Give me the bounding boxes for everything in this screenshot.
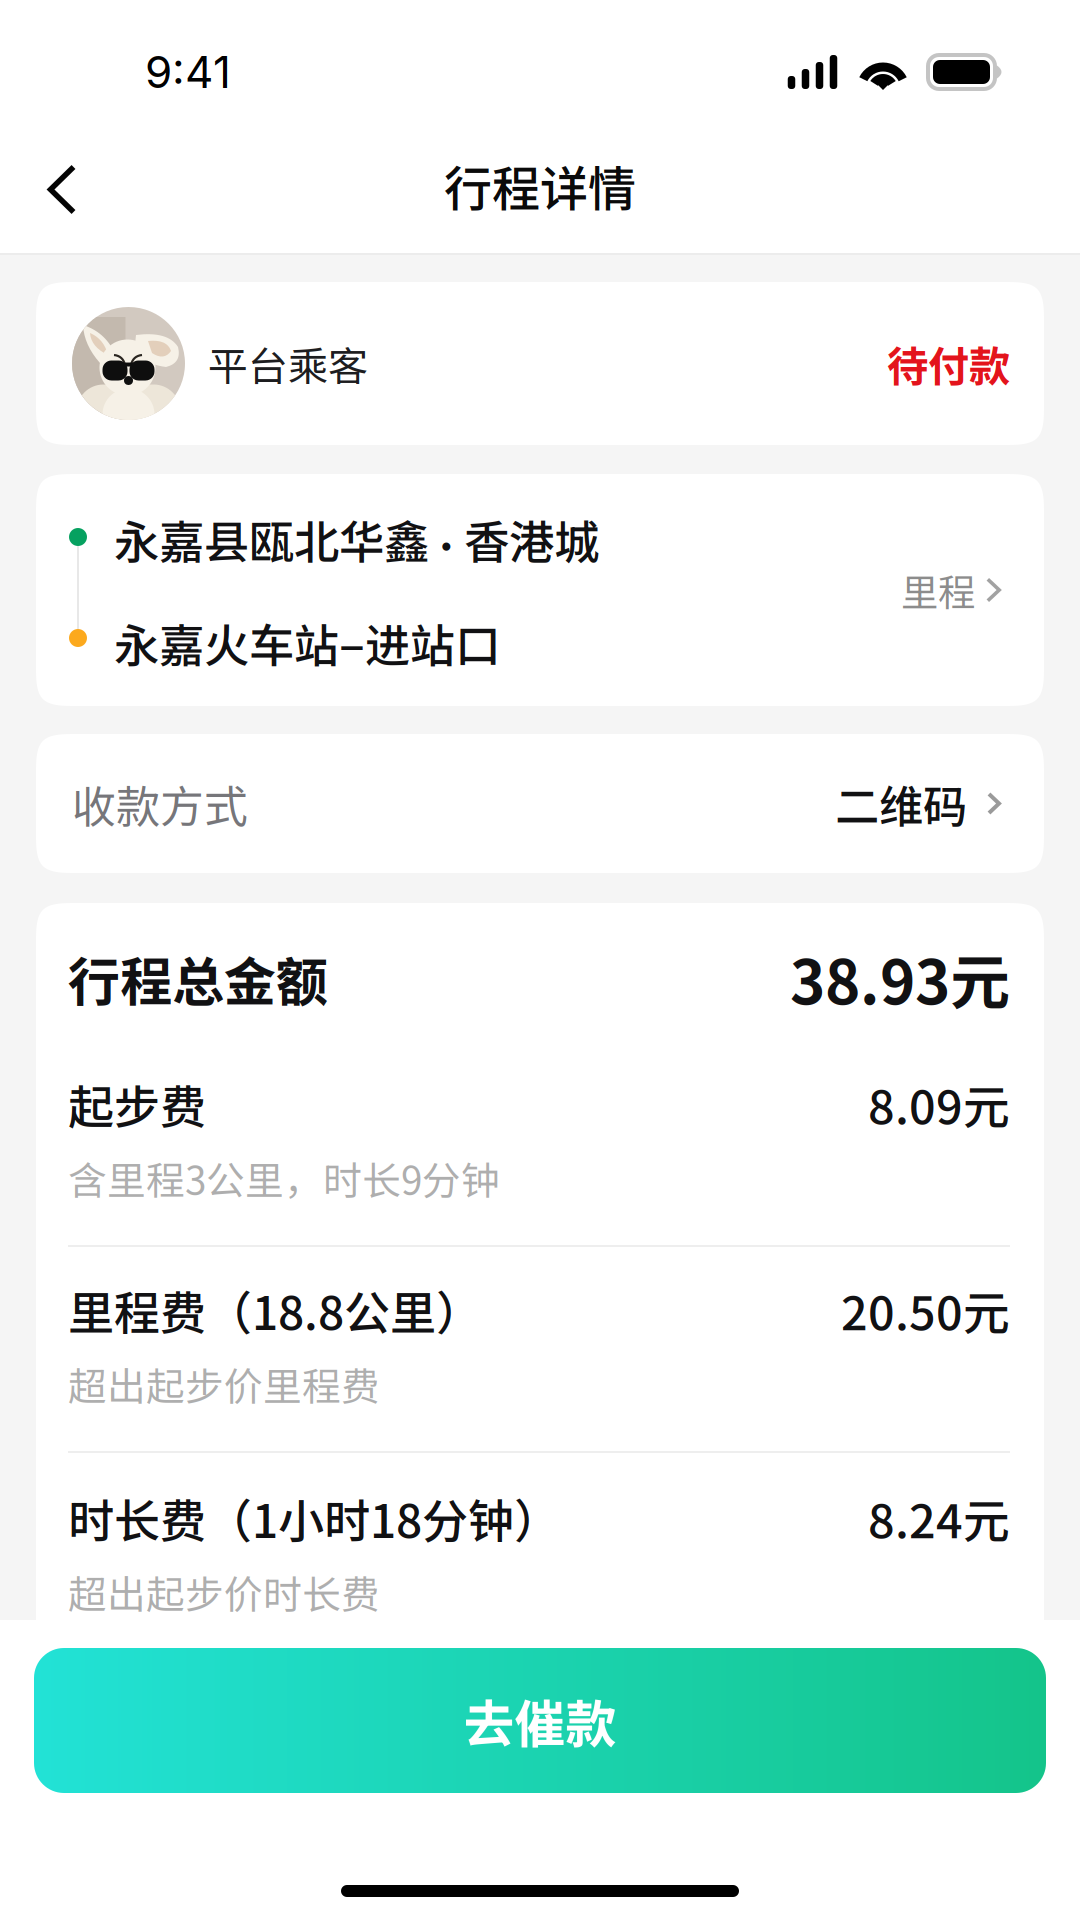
staticText: 永嘉火车站–进站口 [114, 607, 500, 675]
button[interactable]: 永嘉县瓯北华鑫·香港城 [36, 474, 1044, 706]
staticText: 超出起步价里程费 [68, 1356, 380, 1412]
staticText: 8.24元 [868, 1484, 1010, 1552]
staticText: 行程总金额 [68, 940, 328, 1016]
staticText: 永嘉县瓯北华鑫·香港城 [114, 507, 599, 571]
staticText: 起步费 [68, 1071, 206, 1137]
button[interactable]: 返回 [10, 137, 114, 241]
button[interactable]: 平台乘客 [36, 282, 1044, 445]
staticText: 9:41 [145, 45, 231, 99]
staticText: 时长费（1小时18分钟） [68, 1485, 560, 1551]
staticText: 平台乘客 [208, 334, 368, 392]
staticText: 收款方式 [72, 772, 248, 835]
staticText: 二维码 [835, 772, 967, 835]
staticText: 待付款 [887, 334, 1010, 393]
staticText: 里程 [901, 563, 975, 617]
staticText: 20.50元 [841, 1276, 1010, 1344]
button[interactable]: 去催款 [34, 1648, 1046, 1793]
staticText: 超出起步价时长费 [68, 1564, 380, 1620]
staticText: 行程详情 [444, 151, 636, 220]
staticText: 38.93元 [790, 935, 1010, 1021]
staticText: 里程费（18.8公里） [68, 1277, 482, 1343]
staticText: 8.09元 [868, 1070, 1010, 1138]
staticText: 去催款 [463, 1684, 616, 1757]
button[interactable]: 收款方式 [36, 734, 1044, 873]
staticText: 含里程3公里，时长9分钟 [68, 1150, 500, 1206]
